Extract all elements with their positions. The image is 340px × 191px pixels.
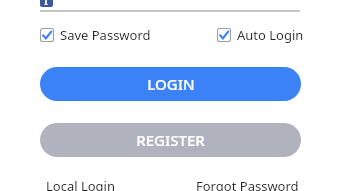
button[interactable]: Local Login [46,177,116,191]
button[interactable]: Forgot Password [196,177,299,191]
button[interactable]: Save Password [40,26,151,44]
staticText: REGISTER [136,130,205,150]
staticText: Forgot Password [196,177,299,191]
button[interactable]: LOGIN [40,67,301,101]
staticText: Local Login [46,177,116,191]
staticText: Auto Login [237,26,304,44]
button[interactable]: Auto Login [217,26,304,44]
staticText: f [44,0,49,7]
staticText: Save Password [60,26,151,44]
staticText: LOGIN [147,74,195,94]
button[interactable]: Facebook login [40,0,53,7]
button[interactable]: REGISTER [40,123,301,157]
